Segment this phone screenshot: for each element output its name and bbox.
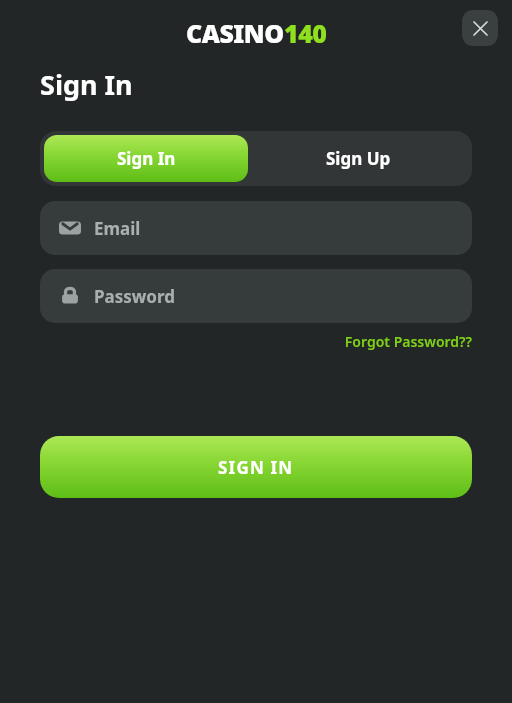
- staticText: Password: [94, 285, 175, 308]
- button[interactable]: Forgot Password??: [344, 332, 472, 351]
- staticText: Forgot Password??: [344, 332, 472, 351]
- button[interactable]: Close: [462, 10, 498, 46]
- staticText: Sign Up: [326, 147, 391, 170]
- staticText: CASINO: [186, 16, 284, 50]
- staticText: SIGN IN: [218, 456, 294, 479]
- button[interactable]: SIGN IN: [40, 436, 472, 498]
- button[interactable]: Sign Up: [248, 135, 468, 182]
- staticText: Sign In: [117, 147, 176, 170]
- staticText: Email: [94, 217, 141, 240]
- staticText: Sign In: [40, 66, 133, 103]
- button[interactable]: Sign In: [44, 135, 248, 182]
- button[interactable]: Password: [40, 269, 472, 323]
- button[interactable]: Email: [40, 201, 472, 255]
- staticText: 140: [284, 16, 327, 50]
